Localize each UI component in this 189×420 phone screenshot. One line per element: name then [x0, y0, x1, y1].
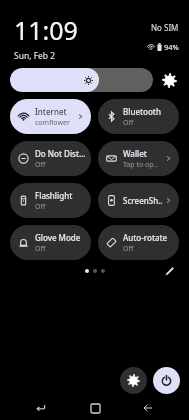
button[interactable]: Open settings [160, 71, 179, 90]
staticText: 94% [164, 42, 179, 52]
staticText: Auto-rotate [123, 232, 168, 243]
button[interactable]: Auto-rotate [98, 225, 179, 260]
button[interactable]: Do Not Distu.. [10, 141, 91, 176]
staticText: Do Not Distu.. [35, 148, 86, 159]
staticText: No SIM [151, 22, 179, 33]
button[interactable]: Internet [10, 99, 91, 134]
button[interactable]: Edit tiles [161, 263, 177, 279]
button[interactable]: Back [135, 396, 161, 420]
staticText: Off [123, 244, 134, 254]
staticText: comflower [35, 118, 70, 128]
staticText: Wallet [123, 148, 147, 159]
staticText: Bluetooth [123, 106, 161, 117]
button[interactable]: Recents [28, 396, 54, 420]
staticText: ScreenSh.. [123, 195, 163, 206]
staticText: Flashlight [35, 190, 73, 201]
staticText: Off [35, 160, 46, 170]
staticText: Sun, Feb 2 [14, 50, 56, 62]
staticText: Off [35, 244, 46, 254]
button[interactable]: Bluetooth [98, 99, 179, 134]
staticText: Glove Mode [35, 232, 81, 243]
button[interactable]: Brightness [10, 68, 153, 92]
staticText: Off [123, 118, 134, 128]
button[interactable]: Power [153, 367, 180, 394]
button[interactable]: Wallet [98, 141, 179, 176]
button[interactable]: ScreenSh.. [98, 183, 179, 218]
button[interactable]: Glove Mode [10, 225, 91, 260]
staticText: Tap to op.. [123, 160, 158, 170]
staticText: Internet [35, 106, 67, 117]
button[interactable]: Home [82, 396, 108, 420]
staticText: Off [35, 202, 46, 212]
button[interactable]: Flashlight [10, 183, 91, 218]
staticText: 11:09 [14, 13, 78, 47]
button[interactable]: Settings [120, 367, 147, 394]
